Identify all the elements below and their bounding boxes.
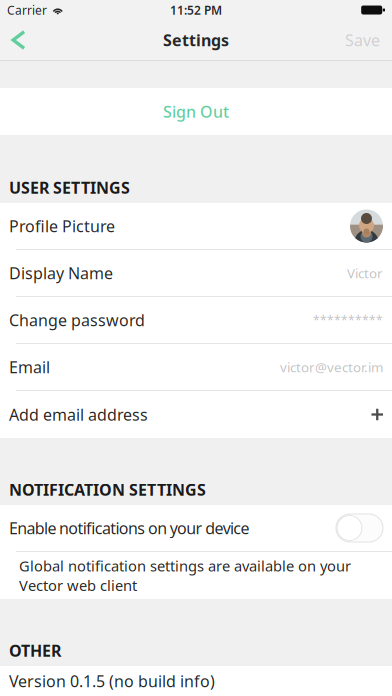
button[interactable]: Profile Picture xyxy=(0,203,392,249)
button[interactable]: Change password xyxy=(0,297,392,343)
button[interactable]: Sign Out xyxy=(0,88,392,135)
staticText: 11:52 PM xyxy=(170,2,222,18)
staticText: OTHER xyxy=(9,640,61,661)
button[interactable]: Add email address xyxy=(0,391,392,438)
staticText: Settings xyxy=(163,29,229,51)
staticText: Version 0.1.5 (no build info) xyxy=(9,670,215,692)
staticText: USER SETTINGS xyxy=(9,177,130,198)
button[interactable]: Enable notifications on your device xyxy=(0,505,392,551)
staticText: Carrier xyxy=(7,2,47,18)
staticText: Save xyxy=(345,29,380,51)
staticText: Global notification settings are availab… xyxy=(19,556,351,595)
staticText: Sign Out xyxy=(163,101,229,122)
staticText: Change password xyxy=(9,309,145,331)
staticText: Victor xyxy=(347,264,383,282)
staticText: Enable notifications on your device xyxy=(9,517,249,539)
staticText: ********** xyxy=(313,312,383,328)
button[interactable]: Display Name xyxy=(0,250,392,296)
staticText: Display Name xyxy=(9,262,113,284)
staticText: victor@vector.im xyxy=(280,358,383,376)
button[interactable]: Back xyxy=(0,20,46,60)
staticText: Email xyxy=(9,356,50,378)
staticText: Add email address xyxy=(9,404,148,425)
button[interactable]: Email xyxy=(0,344,392,390)
staticText: Profile Picture xyxy=(9,215,115,237)
staticText: NOTIFICATION SETTINGS xyxy=(9,479,206,500)
button[interactable]: Save xyxy=(332,20,392,60)
